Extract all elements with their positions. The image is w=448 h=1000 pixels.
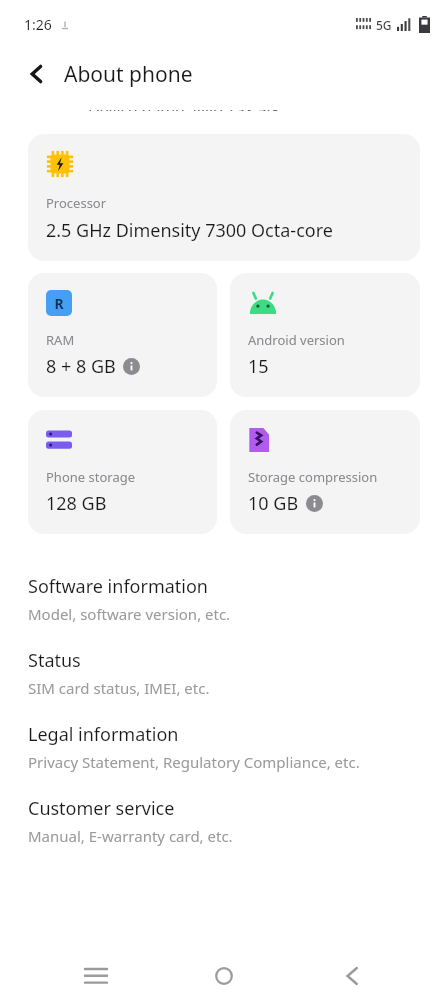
button[interactable]: More information [123, 358, 140, 375]
staticText: 8 + 8 GB [46, 354, 116, 379]
button[interactable]: Storage compression [230, 410, 420, 534]
button[interactable]: Legal information [0, 722, 448, 772]
button[interactable]: Back [14, 51, 60, 97]
staticText: Legal information [28, 722, 179, 747]
staticText: 1:26 [24, 15, 52, 34]
button[interactable]: Status [0, 648, 448, 698]
staticText: Model, software version, etc. [28, 604, 231, 624]
staticText: Android version [248, 331, 345, 349]
staticText: 5G [376, 17, 392, 33]
staticText: Privacy Statement, Regulatory Compliance… [28, 752, 360, 772]
staticText: R [54, 294, 64, 313]
staticText: Phone storage [46, 468, 136, 486]
button[interactable]: Back [320, 954, 384, 998]
staticText: Device name: vivo T3x 5G [88, 110, 279, 111]
staticText: 15 [248, 354, 269, 379]
staticText: 10 GB [248, 491, 299, 516]
staticText: Status [28, 648, 81, 673]
button[interactable]: Home [192, 954, 256, 998]
staticText: 2.5 GHz Dimensity 7300 Octa-core [46, 218, 333, 243]
button[interactable]: Customer service [0, 796, 448, 846]
staticText: SIM card status, IMEI, etc. [28, 678, 210, 698]
staticText: RAM [46, 331, 75, 349]
button[interactable]: Android version [230, 273, 420, 397]
staticText: Processor [46, 194, 107, 212]
button[interactable]: Software information [0, 574, 448, 624]
staticText: About phone [64, 60, 193, 89]
button[interactable]: Recent apps [64, 954, 128, 998]
staticText: 128 GB [46, 491, 107, 516]
staticText: Manual, E-warranty card, etc. [28, 826, 233, 846]
button[interactable]: Processor [28, 134, 420, 261]
staticText: Software information [28, 574, 208, 599]
staticText: Customer service [28, 796, 175, 821]
button[interactable]: R [28, 273, 217, 397]
button[interactable]: Phone storage [28, 410, 217, 534]
button[interactable]: More information [306, 495, 323, 512]
staticText: Storage compression [248, 468, 378, 486]
button[interactable]: Device name: vivo T3x 5G [0, 110, 448, 122]
